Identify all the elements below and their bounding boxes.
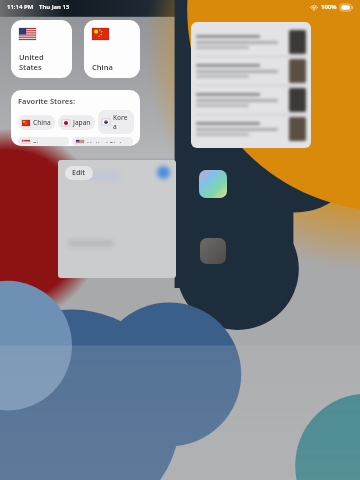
staticText: Edit <box>72 168 86 178</box>
button[interactable]: China <box>18 115 55 130</box>
staticText: Korea <box>113 113 130 131</box>
staticText: Singapore <box>33 140 65 143</box>
button[interactable]: Korea <box>98 110 134 134</box>
button[interactable]: App icon <box>200 238 226 264</box>
button[interactable]: United States <box>72 137 133 146</box>
staticText: 11:14 PM <box>7 3 34 11</box>
staticText: United States <box>87 140 129 143</box>
staticText: 100% <box>321 3 337 11</box>
button[interactable]: China <box>84 20 140 78</box>
staticText: Japan <box>73 118 91 127</box>
button[interactable]: App icon <box>199 170 227 198</box>
button[interactable]: Favorite Stores: <box>11 90 140 146</box>
button[interactable]: Singapore <box>18 137 69 146</box>
staticText: Thu Jan 13 <box>39 3 70 11</box>
button[interactable]: Japan <box>58 115 95 130</box>
staticText: Favorite Stores: <box>18 96 75 106</box>
button[interactable]: United States <box>11 20 72 78</box>
staticText: China <box>33 118 51 127</box>
button[interactable]: Edit <box>65 166 93 180</box>
staticText: China <box>92 62 113 72</box>
staticText: United States <box>19 52 64 72</box>
